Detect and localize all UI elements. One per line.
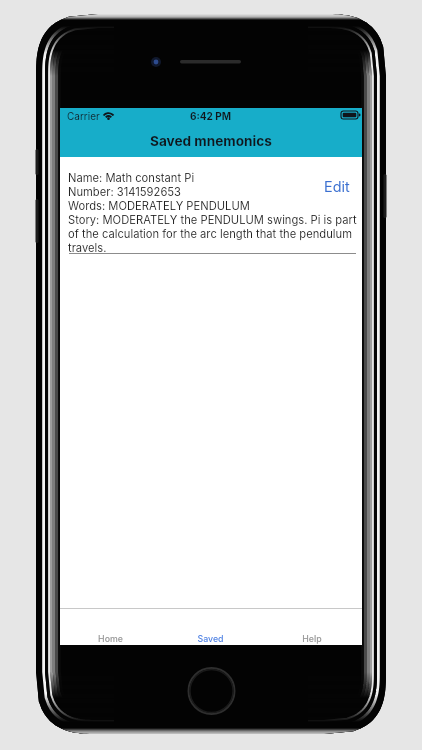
staticText: Saved mnemonics [150, 133, 272, 149]
staticText: Help [302, 633, 322, 644]
other: Wi-Fi signal [102, 111, 115, 120]
staticText: Saved [197, 633, 224, 644]
staticText: 6:42 PM [190, 110, 232, 122]
button[interactable]: Saved [160, 631, 261, 645]
staticText: Edit [324, 178, 350, 195]
other: Battery full [341, 111, 361, 120]
staticText: Home [98, 633, 123, 644]
staticText: Name: Math constant Pi Number: 314159265… [68, 171, 360, 255]
staticText: Carrier [67, 110, 100, 122]
button[interactable]: Edit [322, 176, 352, 197]
button[interactable]: Help [261, 631, 362, 645]
button[interactable]: Home [60, 631, 160, 645]
